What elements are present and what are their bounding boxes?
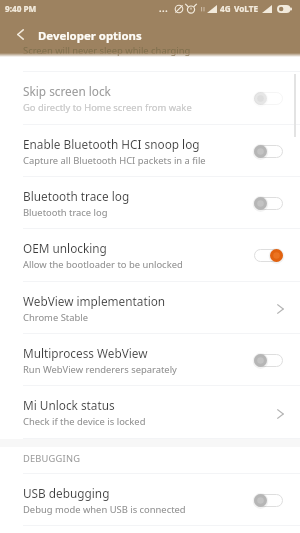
staticText: DEBUGGING — [23, 452, 81, 465]
button[interactable]: Toggle off — [254, 354, 283, 367]
button[interactable]: Toggle off — [254, 145, 283, 158]
staticText: Debug mode when USB is connected — [23, 503, 186, 516]
staticText: Mi Unlock status — [23, 397, 115, 413]
staticText: Go directly to Home screen from wake — [23, 101, 192, 114]
button[interactable]: Back — [0, 17, 38, 52]
staticText: USB debugging — [23, 485, 110, 501]
button[interactable]: Toggle off — [254, 92, 283, 105]
staticText: 9:40 PM — [5, 3, 37, 14]
button[interactable]: WebView implementation — [0, 282, 300, 334]
staticText: WebView implementation — [23, 293, 166, 309]
staticText: Skip screen lock — [23, 83, 111, 99]
staticText: 4G — [220, 3, 231, 14]
button[interactable]: Toggle off — [254, 197, 283, 210]
staticText: Check if the device is locked — [23, 415, 146, 428]
staticText: Multiprocess WebView — [23, 345, 148, 361]
staticText: Chrome Stable — [23, 311, 88, 324]
button[interactable]: Mi Unlock status — [0, 386, 300, 439]
staticText: Capture all Bluetooth HCI packets in a f… — [23, 154, 206, 167]
button[interactable]: USB debugging — [0, 474, 300, 526]
button[interactable]: OEM unlocking — [0, 229, 300, 282]
staticText: Developer options — [38, 28, 142, 44]
button[interactable]: Enable Bluetooth HCI snoop log — [0, 125, 300, 177]
staticText: Screen will never sleep while charging — [23, 44, 191, 57]
button[interactable]: Multiprocess WebView — [0, 334, 300, 386]
staticText: Stay awake — [23, 38, 85, 54]
staticText: Run WebView renderers separately — [23, 363, 177, 376]
button[interactable]: Toggle on — [254, 249, 283, 262]
staticText: Bluetooth trace log — [23, 206, 108, 219]
button[interactable]: Bluetooth trace log — [0, 177, 300, 229]
button[interactable]: Skip screen lock — [0, 72, 300, 125]
staticText: VoLTE — [234, 3, 258, 14]
staticText: Bluetooth trace log — [23, 188, 130, 204]
button[interactable]: Stay awake — [0, 20, 300, 72]
button[interactable]: Toggle off — [254, 494, 283, 507]
staticText: OEM unlocking — [23, 240, 107, 256]
staticText: Allow the bootloader to be unlocked — [23, 258, 183, 271]
staticText: Enable Bluetooth HCI snoop log — [23, 136, 200, 152]
